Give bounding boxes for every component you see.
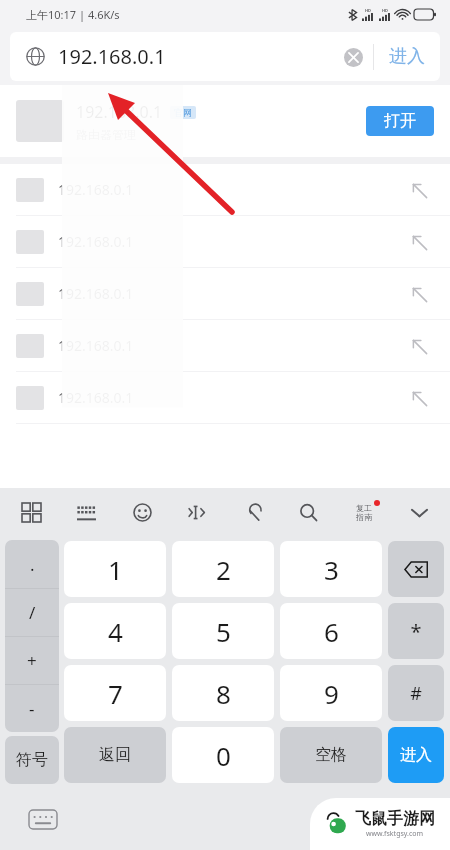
button[interactable]: 返回 [64, 727, 166, 783]
staticText: 5 [216, 614, 231, 649]
staticText: HD [365, 8, 371, 13]
button[interactable]: / [5, 589, 59, 636]
staticText: 官网 [174, 107, 192, 118]
button[interactable]: Clear [333, 37, 373, 77]
button[interactable]: 符号 [5, 736, 59, 784]
button[interactable]: 0 [172, 727, 274, 783]
staticText: 192.168.0.1 [58, 232, 404, 251]
staticText: 空格 [315, 745, 347, 765]
button[interactable]: Search [291, 495, 325, 529]
staticText: 1 [108, 552, 123, 587]
button[interactable]: 7 [64, 665, 166, 721]
button[interactable]: 192.168.0.1 [10, 32, 440, 81]
button[interactable]: Keyboard [69, 495, 103, 529]
button[interactable]: Cursor [180, 495, 214, 529]
staticText: / [29, 601, 36, 624]
staticText: 返回 [99, 745, 131, 765]
button[interactable]: 192.168.0.1 [0, 268, 450, 319]
staticText: . [30, 553, 35, 576]
staticText: HD [382, 8, 388, 13]
button[interactable]: 3 [280, 541, 382, 597]
button[interactable]: + [5, 637, 59, 684]
button[interactable]: Emoji [125, 495, 159, 529]
button[interactable]: 5 [172, 603, 274, 659]
button[interactable]: * [388, 603, 444, 659]
button[interactable]: Fill [404, 227, 434, 257]
button[interactable]: 9 [280, 665, 382, 721]
staticText: 4 [108, 614, 123, 649]
button[interactable]: 192.168.0.1 [0, 372, 450, 423]
button[interactable]: Hide keyboard [402, 495, 436, 529]
button[interactable]: Backspace [388, 541, 444, 597]
staticText: * [410, 618, 422, 645]
staticText: 0 [216, 738, 231, 773]
button[interactable]: # [388, 665, 444, 721]
staticText: 192.168.0.1 [58, 43, 166, 70]
staticText: 飞鼠手游网 [355, 809, 435, 829]
staticText: 192.168.0.1 [76, 101, 163, 123]
button[interactable]: 2 [172, 541, 274, 597]
button[interactable]: 192.168.0.1 [0, 164, 450, 215]
button[interactable]: - [5, 685, 59, 732]
staticText: 符号 [16, 750, 48, 770]
button[interactable]: Apps [14, 495, 48, 529]
button[interactable]: Fill [404, 331, 434, 361]
staticText: 6 [324, 614, 339, 649]
staticText: 3 [324, 552, 339, 587]
button[interactable]: 4 [64, 603, 166, 659]
button[interactable]: 192.168.0.1 [0, 85, 450, 157]
staticText: 2 [216, 552, 231, 587]
button[interactable]: Fill [404, 175, 434, 205]
button[interactable]: Fill [404, 279, 434, 309]
button[interactable]: 进入 [388, 727, 444, 783]
staticText: 上午10:17 | 4.6K/s [26, 7, 120, 22]
button[interactable]: 6 [280, 603, 382, 659]
button[interactable]: 8 [172, 665, 274, 721]
button[interactable]: 1 [64, 541, 166, 597]
staticText: 9 [324, 676, 339, 711]
staticText: 192.168.0.1 [58, 388, 404, 407]
staticText: 192.168.0.1 [58, 180, 404, 199]
button[interactable]: Switch keyboard [28, 809, 58, 830]
button[interactable]: 空格 [280, 727, 382, 783]
staticText: 192.168.0.1 [58, 284, 404, 303]
button[interactable]: 复工 指南 [347, 495, 381, 529]
staticText: 进入 [400, 745, 432, 765]
button[interactable]: 192.168.0.1 [0, 216, 450, 267]
button[interactable]: 打开 [366, 106, 434, 136]
staticText: 7 [108, 676, 123, 711]
staticText: www.fsktgsy.com [366, 829, 424, 839]
staticText: + [27, 649, 37, 672]
button[interactable]: Clipboard [236, 495, 270, 529]
staticText: 192.168.0.1 [58, 336, 404, 355]
staticText: - [29, 697, 35, 720]
staticText: # [410, 681, 422, 706]
button[interactable]: 192.168.0.1 [0, 320, 450, 371]
staticText: 8 [216, 676, 231, 711]
button[interactable]: . [5, 540, 59, 588]
button[interactable]: Fill [404, 383, 434, 413]
button[interactable]: 进入 [374, 32, 440, 81]
staticText: 进入 [389, 45, 425, 68]
staticText: 复工 指南 [356, 503, 372, 522]
staticText: 打开 [384, 111, 416, 131]
